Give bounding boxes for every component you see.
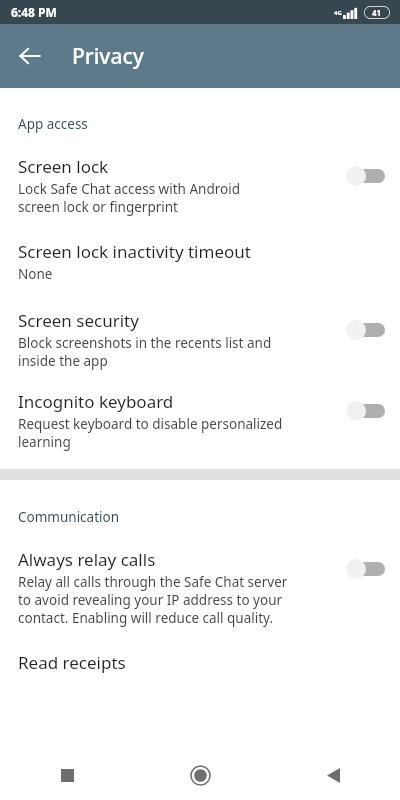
staticText: Incognito keyboard bbox=[18, 390, 174, 413]
button[interactable]: Back bbox=[6, 32, 54, 80]
staticText: Lock Safe Chat access with Android scree… bbox=[18, 180, 240, 216]
staticText: None bbox=[18, 265, 53, 283]
button[interactable]: Screen lock inactivity timeout bbox=[0, 240, 400, 283]
button[interactable]: Toggle bbox=[346, 319, 386, 341]
staticText: Screen lock bbox=[18, 155, 109, 178]
staticText: 6:48 PM bbox=[11, 4, 57, 20]
staticText: App access bbox=[18, 115, 88, 133]
button[interactable]: Read receipts bbox=[0, 651, 400, 674]
staticText: Screen lock inactivity timeout bbox=[18, 240, 251, 263]
staticText: 41 bbox=[372, 7, 382, 18]
staticText: Read receipts bbox=[18, 651, 126, 674]
button[interactable]: Toggle bbox=[346, 400, 386, 422]
button[interactable]: Back bbox=[267, 750, 400, 800]
staticText: Always relay calls bbox=[18, 548, 156, 571]
button[interactable]: Toggle bbox=[346, 558, 386, 580]
staticText: Screen security bbox=[18, 309, 139, 332]
button[interactable]: Toggle bbox=[346, 165, 386, 187]
staticText: Relay all calls through the Safe Chat se… bbox=[18, 573, 288, 627]
button[interactable]: Home bbox=[134, 750, 267, 800]
button[interactable]: Incognito keyboard bbox=[0, 390, 400, 451]
button[interactable]: Screen lock bbox=[0, 155, 400, 216]
staticText: Privacy bbox=[72, 42, 144, 71]
staticText: Block screenshots in the recents list an… bbox=[18, 334, 272, 370]
staticText: Request keyboard to disable personalized… bbox=[18, 415, 283, 451]
staticText: Communication bbox=[18, 508, 120, 526]
button[interactable]: Recents bbox=[0, 750, 134, 800]
button[interactable]: Always relay calls bbox=[0, 548, 400, 627]
button[interactable]: Screen security bbox=[0, 309, 400, 370]
staticText: 4G bbox=[334, 9, 342, 17]
